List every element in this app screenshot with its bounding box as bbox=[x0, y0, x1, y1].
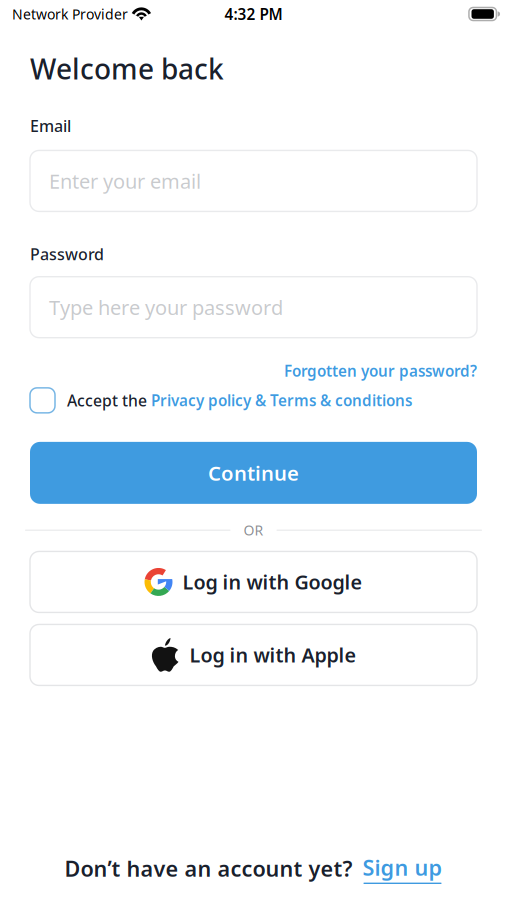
staticText: 4:32 PM bbox=[224, 4, 282, 24]
button[interactable]: Type here your password bbox=[30, 277, 477, 338]
staticText: Forgotten your password? bbox=[284, 361, 477, 381]
staticText: Sign up bbox=[362, 853, 442, 882]
button[interactable]: Sign up bbox=[362, 853, 442, 884]
staticText: Enter your email bbox=[49, 168, 201, 194]
staticText: Type here your password bbox=[49, 294, 283, 320]
staticText: Email bbox=[30, 115, 71, 136]
button[interactable]: Enter your email bbox=[30, 150, 477, 211]
button[interactable]: Forgotten your password? bbox=[284, 361, 477, 381]
button[interactable]: Accept the bbox=[67, 390, 412, 411]
button[interactable]: Log in with Google bbox=[30, 551, 477, 612]
staticText: Continue bbox=[208, 459, 299, 486]
button[interactable]: Log in with Apple bbox=[30, 624, 477, 685]
staticText: Welcome back bbox=[30, 50, 224, 87]
staticText: Log in with Apple bbox=[189, 642, 356, 668]
staticText: Network Provider bbox=[12, 5, 128, 23]
button[interactable]: Continue bbox=[30, 442, 477, 504]
button[interactable]: Accept the privacy policy and terms bbox=[30, 388, 55, 413]
staticText: Log in with Google bbox=[182, 569, 362, 595]
staticText: Password bbox=[30, 243, 104, 265]
staticText: Privacy policy & Terms & conditions bbox=[151, 390, 412, 410]
staticText: OR bbox=[243, 521, 263, 539]
staticText: Accept the bbox=[67, 390, 151, 411]
staticText: Don’t have an account yet? bbox=[64, 854, 352, 883]
